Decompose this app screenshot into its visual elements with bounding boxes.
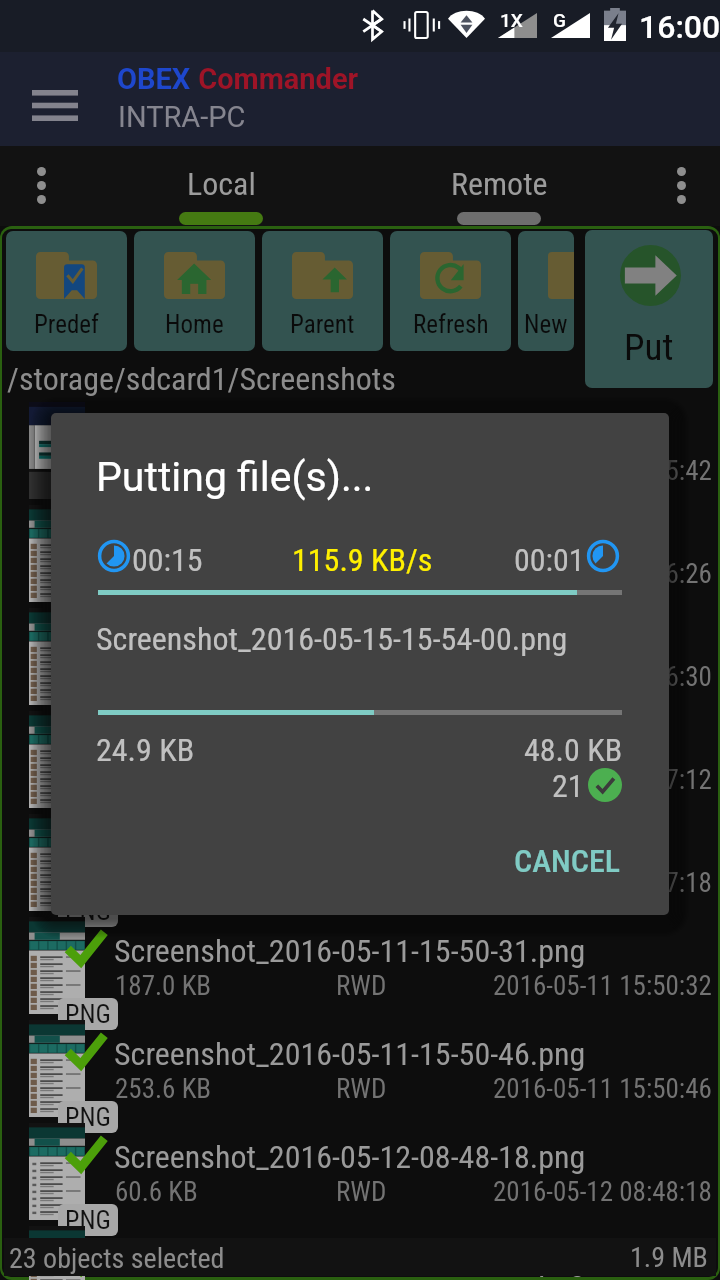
button[interactable]: Predef: [6, 231, 127, 351]
staticText: PNG: [65, 1205, 111, 1235]
staticText: INTRA-PC: [118, 100, 246, 134]
button[interactable]: PNG: [0, 1224, 718, 1280]
staticText: PNG: [65, 587, 111, 617]
button[interactable]: Local: [81, 146, 361, 226]
staticText: 187.0 KB: [115, 970, 212, 1002]
staticText: RWD: [336, 1176, 387, 1208]
staticText: 2016-05-10 07:07:12: [493, 764, 712, 796]
staticText: 1X: [500, 9, 523, 31]
staticText: Local: [187, 165, 256, 203]
staticText: Screenshot_2016-05-10-07-06-26.png: [114, 520, 586, 558]
button[interactable]: PNG: [0, 1018, 718, 1121]
staticText: /storage/sdcard1/Screenshots: [7, 360, 396, 398]
button[interactable]: PNG: [0, 400, 718, 503]
staticText: 16:00: [639, 8, 720, 46]
button[interactable]: Remote pane menu: [657, 161, 705, 209]
button[interactable]: Refresh: [390, 231, 511, 351]
staticText: 00:01: [514, 541, 585, 579]
staticText: 24.9 KB: [96, 731, 195, 769]
button[interactable]: Home: [134, 231, 255, 351]
button[interactable]: PNG: [0, 915, 718, 1018]
staticText: 48.0 KB: [524, 731, 623, 769]
staticText: Parent: [290, 310, 355, 339]
staticText: 23 objects selected: [9, 1242, 225, 1275]
staticText: 60.6 KB: [115, 1176, 198, 1208]
staticText: Screenshot_2016-05-15-15-54-00.png: [96, 620, 568, 658]
staticText: 115.9 KB/s: [292, 541, 433, 579]
staticText: 2016-05-12 08:50:02: [493, 1279, 712, 1280]
button[interactable]: PNG: [0, 606, 718, 709]
staticText: Screenshot_2016-05-12-08-50-02.png: [114, 1241, 586, 1279]
staticText: Screenshot_2016-05-10-07-07-18.png: [114, 829, 586, 867]
staticText: Putting file(s)...: [96, 453, 374, 501]
staticText: Predef: [34, 310, 99, 339]
button[interactable]: PNG: [0, 503, 718, 606]
staticText: Refresh: [413, 310, 489, 339]
staticText: New: [524, 310, 568, 339]
staticText: RWD: [336, 1073, 387, 1105]
staticText: Screenshot_2016-05-11-15-50-31.png: [114, 932, 586, 970]
staticText: 2016-05-12 08:48:18: [493, 1176, 712, 1208]
staticText: 2016-05-11 15:50:46: [493, 1073, 712, 1105]
staticText: 253.6 KB: [115, 1073, 212, 1105]
button[interactable]: CANCEL: [492, 832, 642, 890]
staticText: 140.6 KB: [115, 558, 212, 590]
staticText: 96.6 KB: [115, 455, 198, 487]
staticText: Put: [624, 326, 674, 369]
staticText: G: [553, 9, 566, 31]
staticText: OBEX: [117, 62, 191, 96]
staticText: 2016-05-10 07:06:26: [493, 558, 712, 590]
staticText: 2016-05-10 07:06:30: [493, 661, 712, 693]
staticText: RWD: [336, 970, 387, 1002]
staticText: PNG: [65, 484, 111, 514]
staticText: 21: [552, 767, 584, 805]
staticText: 2016-05-10 07:07:18: [493, 867, 712, 899]
staticText: Screenshot_2016-05-10-07-06-30.png: [114, 623, 586, 661]
button[interactable]: Remote: [359, 146, 639, 226]
staticText: Home: [165, 310, 224, 339]
staticText: Commander: [191, 62, 359, 96]
staticText: CANCEL: [514, 842, 620, 880]
button[interactable]: Open navigation drawer: [20, 70, 90, 140]
staticText: Screenshot_2016-05-11-15-50-46.png: [114, 1035, 586, 1073]
staticText: Screenshot_2016-05-12-08-48-18.png: [114, 1138, 586, 1176]
staticText: 2016-05-11 15:50:32: [493, 970, 712, 1002]
staticText: RWD: [336, 558, 387, 590]
button[interactable]: Put: [585, 230, 713, 388]
staticText: Remote: [451, 165, 548, 203]
staticText: PNG: [65, 690, 111, 720]
staticText: 2016-05-10 07:05:42: [493, 455, 712, 487]
button[interactable]: PNG: [0, 709, 718, 812]
staticText: 1.9 MB: [630, 1241, 708, 1274]
staticText: PNG: [65, 999, 111, 1029]
button[interactable]: New: [518, 231, 574, 351]
button[interactable]: Parent: [262, 231, 383, 351]
staticText: Screenshot_2016-05-10-07-07-12.png: [114, 726, 586, 764]
button[interactable]: PNG: [0, 812, 718, 915]
staticText: PNG: [65, 896, 111, 926]
button[interactable]: Local pane menu: [17, 161, 65, 209]
staticText: PNG: [65, 1102, 111, 1132]
staticText: RWD: [336, 455, 387, 487]
button[interactable]: PNG: [0, 1121, 718, 1224]
staticText: 00:15: [132, 541, 203, 579]
